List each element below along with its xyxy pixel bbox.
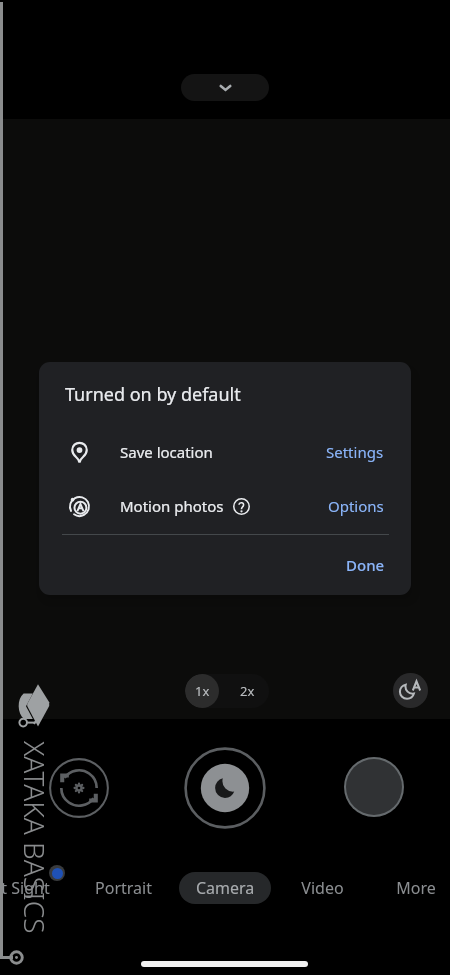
staticText: Portrait <box>95 877 152 899</box>
staticText: 1x <box>195 682 210 700</box>
staticText: Motion photos <box>120 496 224 516</box>
button[interactable]: Shutter <box>184 747 266 829</box>
button[interactable]: Expand camera options <box>181 74 269 101</box>
button[interactable]: Open gallery <box>344 757 404 817</box>
staticText: Video <box>301 877 344 899</box>
button[interactable]: 1x <box>185 674 219 708</box>
staticText: More <box>396 877 436 899</box>
button[interactable]: 2x <box>225 674 269 708</box>
button[interactable]: Portrait <box>83 872 164 904</box>
staticText: Save location <box>120 442 213 462</box>
staticText: Settings <box>326 442 384 462</box>
button[interactable]: Save location <box>39 430 411 474</box>
staticText: Camera <box>196 877 255 899</box>
staticText: t Sight <box>1 877 50 899</box>
button[interactable]: t Sight <box>0 872 60 904</box>
button[interactable]: Night Sight auto <box>393 673 428 708</box>
staticText: XATAKA BASICS <box>16 741 54 934</box>
button[interactable]: Done <box>333 545 397 585</box>
staticText: 2x <box>240 682 255 700</box>
button[interactable]: Camera <box>179 872 271 904</box>
staticText: Done <box>346 555 385 575</box>
button[interactable]: Motion photos <box>39 484 411 528</box>
staticText: Turned on by default <box>65 382 241 407</box>
button[interactable]: More <box>383 872 449 904</box>
button[interactable]: Switch camera <box>48 757 109 818</box>
staticText: Options <box>328 496 384 516</box>
button[interactable]: Video <box>288 872 356 904</box>
